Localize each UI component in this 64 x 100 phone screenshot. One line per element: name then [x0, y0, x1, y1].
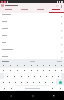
button[interactable]	[55, 73, 61, 79]
button[interactable]: Navigate up	[0, 3, 5, 8]
button[interactable]: Field action	[0, 48, 64, 55]
button[interactable]	[7, 79, 12, 85]
button[interactable]: Field action	[0, 20, 64, 27]
button[interactable]: Search	[54, 3, 59, 8]
button[interactable]	[21, 63, 28, 68]
button[interactable]: Symbols	[0, 85, 8, 91]
button[interactable]	[24, 79, 30, 85]
button[interactable]	[42, 79, 48, 85]
button[interactable]	[7, 63, 14, 68]
button[interactable]	[14, 63, 21, 68]
button[interactable]	[40, 68, 46, 73]
button[interactable]	[40, 63, 46, 68]
button[interactable]	[4, 73, 11, 79]
button[interactable]: Search	[56, 79, 64, 85]
button[interactable]	[37, 73, 43, 79]
button[interactable]	[52, 63, 58, 68]
button[interactable]	[32, 8, 48, 13]
button[interactable]	[49, 73, 55, 79]
button[interactable]	[28, 63, 34, 68]
button[interactable]	[0, 8, 16, 13]
button[interactable]: Field action	[60, 22, 63, 25]
button[interactable]	[18, 79, 24, 85]
button[interactable]: Field action	[60, 15, 63, 18]
button[interactable]: More options	[59, 4, 63, 8]
button[interactable]: Emoji	[8, 85, 15, 91]
button[interactable]: Recent apps	[43, 91, 64, 100]
button[interactable]	[0, 63, 7, 68]
button[interactable]: Shift	[0, 79, 7, 85]
button[interactable]	[21, 68, 28, 73]
button[interactable]	[16, 8, 32, 13]
button[interactable]: Field action	[0, 34, 64, 41]
button[interactable]	[58, 68, 64, 73]
button[interactable]	[52, 68, 58, 73]
button[interactable]	[46, 68, 52, 73]
button[interactable]	[14, 68, 21, 73]
button[interactable]: Field action	[0, 27, 64, 34]
button[interactable]	[25, 73, 31, 79]
button[interactable]: Field action	[60, 36, 63, 39]
button[interactable]	[31, 73, 37, 79]
button[interactable]	[49, 85, 56, 91]
button[interactable]: Space	[15, 86, 49, 90]
button[interactable]	[11, 73, 18, 79]
button[interactable]	[18, 73, 25, 79]
button[interactable]: Field action	[60, 56, 63, 59]
button[interactable]	[30, 79, 36, 85]
button[interactable]	[28, 68, 34, 73]
button[interactable]	[36, 79, 42, 85]
button[interactable]: Field action	[0, 41, 64, 48]
button[interactable]: Field action	[60, 50, 63, 53]
button[interactable]	[48, 8, 64, 13]
button[interactable]: Field action	[60, 29, 63, 32]
button[interactable]	[43, 73, 49, 79]
button[interactable]: Field action	[0, 13, 64, 20]
button[interactable]: Backspace	[48, 79, 56, 85]
button[interactable]: Home	[22, 91, 43, 100]
button[interactable]: Next	[56, 85, 64, 91]
button[interactable]	[34, 63, 40, 68]
button[interactable]: Back	[0, 91, 22, 100]
button[interactable]	[46, 63, 52, 68]
button[interactable]	[12, 79, 18, 85]
button[interactable]	[34, 68, 40, 73]
button[interactable]	[7, 68, 14, 73]
button[interactable]	[0, 68, 7, 73]
button[interactable]	[58, 63, 64, 68]
button[interactable]: Field action	[0, 55, 64, 59]
button[interactable]: Field action	[60, 43, 63, 46]
